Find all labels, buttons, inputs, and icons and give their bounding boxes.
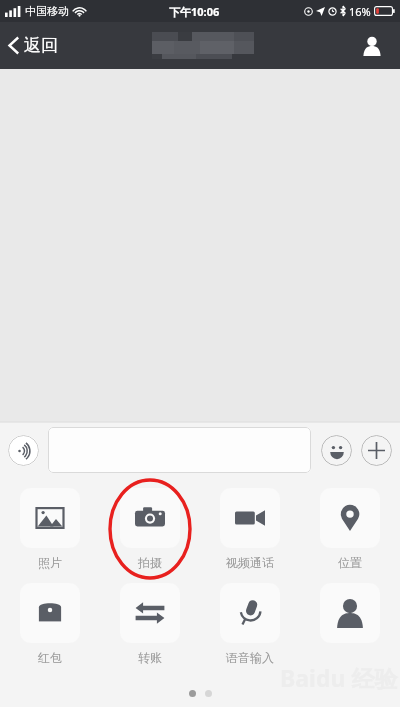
button[interactable]: 返回: [0, 35, 68, 56]
button[interactable]: 照片: [0, 488, 100, 570]
button[interactable]: Contact profile: [357, 31, 387, 61]
button[interactable]: Personal card: [300, 583, 400, 666]
staticText: 位置: [338, 555, 362, 570]
button[interactable]: 拍摄: [100, 488, 200, 570]
button[interactable]: 视频通话: [200, 488, 300, 570]
button[interactable]: Message input: [48, 427, 311, 473]
button[interactable]: Voice message: [8, 435, 39, 466]
staticText: 16%: [349, 4, 371, 19]
button[interactable]: 语音输入: [200, 583, 300, 665]
staticText: 视频通话: [226, 555, 274, 570]
button[interactable]: 红包: [0, 583, 100, 665]
button[interactable]: More options: [361, 435, 392, 466]
staticText: Baidu 经验: [280, 662, 398, 693]
staticText: 拍摄: [138, 555, 162, 570]
staticText: 照片: [38, 555, 62, 570]
staticText: 返回: [24, 35, 58, 56]
staticText: 红包: [38, 650, 62, 665]
button[interactable]: 位置: [300, 488, 400, 570]
button[interactable]: Emoji: [321, 435, 352, 466]
button[interactable]: 转账: [100, 583, 200, 665]
staticText: 中国移动: [25, 4, 69, 18]
staticText: 语音输入: [226, 650, 274, 665]
staticText: 转账: [138, 650, 162, 665]
staticText: 下午10:06: [169, 4, 220, 19]
